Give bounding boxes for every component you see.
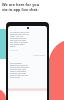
staticText: Our support specialists reply in under t…: [10, 62, 30, 79]
staticText: Sounds good: [33, 54, 45, 57]
staticText: Let us know how it goes: [10, 87, 32, 90]
staticText: Hi there! Thanks for reaching out to our…: [10, 31, 30, 48]
staticText: via in-app live chat.: [2, 7, 39, 12]
staticText: 11:24 AM: [10, 49, 18, 51]
staticText: We are here for you: [2, 2, 40, 7]
